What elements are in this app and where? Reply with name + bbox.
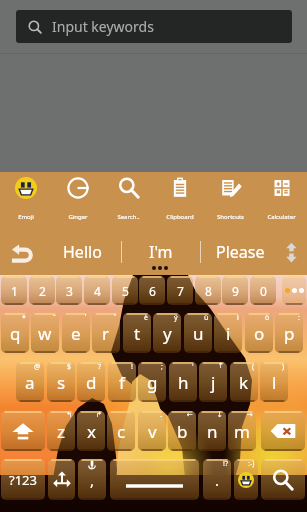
button[interactable]: ˈ xyxy=(62,313,90,353)
staticText: $ xyxy=(67,362,72,372)
button[interactable] xyxy=(1,411,45,451)
staticText: w xyxy=(38,322,52,345)
button[interactable]: Ginger xyxy=(52,172,103,228)
staticText: ↓ xyxy=(217,411,223,419)
staticText: !? xyxy=(223,459,228,469)
button[interactable]: 5 xyxy=(112,276,138,305)
staticText: r xyxy=(102,322,110,345)
button[interactable]: 8 xyxy=(195,276,221,305)
staticText: a xyxy=(25,371,35,394)
button[interactable]: ) xyxy=(260,362,288,402)
staticText: ˚ xyxy=(114,313,117,323)
button[interactable]: ò xyxy=(245,313,273,353)
button[interactable]: → xyxy=(228,411,256,451)
staticText: j xyxy=(211,371,216,394)
staticText: s xyxy=(57,371,66,394)
button[interactable]: ! xyxy=(108,362,136,402)
button[interactable]: 7 xyxy=(167,276,193,305)
button[interactable]: Hello xyxy=(44,228,121,275)
button[interactable]: Clipboard xyxy=(154,172,205,228)
button[interactable]: - xyxy=(138,411,166,451)
button[interactable] xyxy=(48,459,75,500)
button[interactable]: ì xyxy=(214,313,242,353)
staticText: Input keywords xyxy=(52,17,154,36)
button[interactable]: I'm xyxy=(122,228,200,275)
button[interactable]: 3 xyxy=(56,276,82,305)
button[interactable]: ý xyxy=(153,313,181,353)
button[interactable]: ↑ xyxy=(199,362,227,402)
staticText: ↰ xyxy=(66,411,72,419)
staticText: Calculater xyxy=(267,213,296,221)
button[interactable]: !? xyxy=(203,459,231,500)
staticText: ← xyxy=(187,411,193,419)
staticText: 1 xyxy=(11,283,18,299)
button[interactable]: , xyxy=(78,459,106,500)
staticText: q xyxy=(10,322,21,345)
staticText: I'm xyxy=(149,241,173,263)
button[interactable]: ù xyxy=(184,313,212,353)
button[interactable]: ?123 xyxy=(1,459,45,500)
button[interactable]: ; xyxy=(138,362,166,402)
staticText: 2 xyxy=(39,283,46,299)
button[interactable]: Undo xyxy=(0,228,44,275)
staticText: . xyxy=(215,470,220,490)
button[interactable]: ↓ xyxy=(198,411,226,451)
button[interactable]: 6 xyxy=(139,276,165,305)
button[interactable]: è xyxy=(123,313,151,353)
staticText: l xyxy=(272,371,277,394)
staticText: ù xyxy=(204,313,209,323)
button[interactable]: Calculater xyxy=(256,172,307,228)
button[interactable]: 9 xyxy=(222,276,248,305)
button[interactable]: $ xyxy=(47,362,75,402)
button[interactable]: c xyxy=(107,411,135,451)
staticText: y xyxy=(163,322,172,345)
staticText: 0 xyxy=(260,283,267,299)
staticText: Please xyxy=(216,241,265,263)
button[interactable] xyxy=(261,459,305,500)
staticText: , xyxy=(90,470,95,490)
button[interactable]: 0 xyxy=(250,276,276,305)
button[interactable]: Input keywords xyxy=(16,10,292,43)
button[interactable]: : xyxy=(275,313,303,353)
staticText: ) xyxy=(282,362,285,372)
button[interactable]: * xyxy=(1,313,29,353)
button[interactable]: :-) xyxy=(234,459,258,500)
staticText: 8 xyxy=(205,283,212,299)
button[interactable]: More suggestions xyxy=(279,228,307,275)
staticText: ↱ xyxy=(96,411,102,419)
button[interactable]: ( xyxy=(230,362,258,402)
button[interactable]: ↱ xyxy=(77,411,105,451)
button[interactable] xyxy=(261,411,305,451)
staticText: d xyxy=(86,371,97,394)
staticText: ò xyxy=(265,313,270,323)
button[interactable] xyxy=(110,459,199,500)
button[interactable]: ˚ xyxy=(92,313,120,353)
staticText: ˉ xyxy=(53,313,56,323)
staticText: ý xyxy=(174,313,178,323)
button[interactable]: Please xyxy=(201,228,279,275)
staticText: b xyxy=(177,420,188,443)
button[interactable]: 2 xyxy=(29,276,55,305)
button[interactable]: ? xyxy=(77,362,105,402)
button[interactable]: Search.. xyxy=(103,172,154,228)
button[interactable]: ↰ xyxy=(47,411,75,451)
staticText: Ginger xyxy=(68,213,88,221)
button[interactable]: ˉ xyxy=(31,313,59,353)
staticText: ' xyxy=(192,362,194,372)
button[interactable]: ' xyxy=(169,362,197,402)
button[interactable]: @ xyxy=(16,362,44,402)
button[interactable]: 1 xyxy=(1,276,27,305)
button[interactable]: ← xyxy=(168,411,196,451)
staticText: f xyxy=(119,371,125,394)
staticText: m xyxy=(234,420,250,443)
staticText: h xyxy=(178,371,189,394)
staticText: Shortcuts xyxy=(217,213,244,221)
staticText: u xyxy=(193,322,204,345)
button[interactable] xyxy=(282,276,306,305)
staticText: t xyxy=(134,322,141,345)
staticText: c xyxy=(117,420,126,443)
button[interactable]: Shortcuts xyxy=(205,172,256,228)
staticText: g xyxy=(147,371,158,394)
button[interactable]: Emoji xyxy=(0,172,52,228)
button[interactable]: 4 xyxy=(84,276,110,305)
